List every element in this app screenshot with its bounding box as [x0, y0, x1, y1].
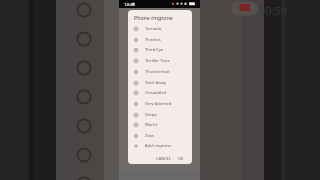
button[interactable]: Thriller Time: [128, 55, 192, 66]
staticText: Unsaddled: [145, 90, 167, 96]
button[interactable]: World: [128, 119, 192, 130]
staticText: OK: [178, 156, 184, 161]
staticText: Thriller Time: [145, 58, 170, 64]
button[interactable]: Zeta: [128, 130, 192, 141]
button[interactable]: Tornado: [128, 23, 192, 34]
button[interactable]: CANCEL: [154, 154, 173, 163]
staticText: Themos: [145, 37, 161, 43]
staticText: Tornado: [145, 26, 162, 32]
staticText: Add ringtone: [145, 143, 171, 149]
button[interactable]: Third Eye: [128, 44, 192, 55]
staticText: Very Alarmed: [145, 101, 172, 107]
button[interactable]: Add ringtone: [128, 140, 192, 151]
button[interactable]: Vespa: [128, 109, 192, 120]
button[interactable]: OK: [176, 154, 186, 163]
staticText: 00:59: [259, 3, 288, 18]
button[interactable]: Twirl Away: [128, 77, 192, 88]
button[interactable]: Thunderfoot: [128, 66, 192, 77]
staticText: Third Eye: [145, 47, 164, 53]
staticText: Phone ringtone: [134, 14, 173, 21]
staticText: Vespa: [145, 112, 157, 118]
staticText: CANCEL: [156, 156, 171, 161]
staticText: Twirl Away: [145, 80, 166, 86]
button[interactable]: Very Alarmed: [128, 98, 192, 109]
staticText: Zeta: [145, 133, 154, 139]
staticText: Thunderfoot: [145, 69, 170, 75]
button[interactable]: Themos: [128, 34, 192, 45]
button[interactable]: Unsaddled: [128, 87, 192, 98]
staticText: World: [145, 122, 157, 128]
staticText: 14:38: [124, 2, 135, 8]
